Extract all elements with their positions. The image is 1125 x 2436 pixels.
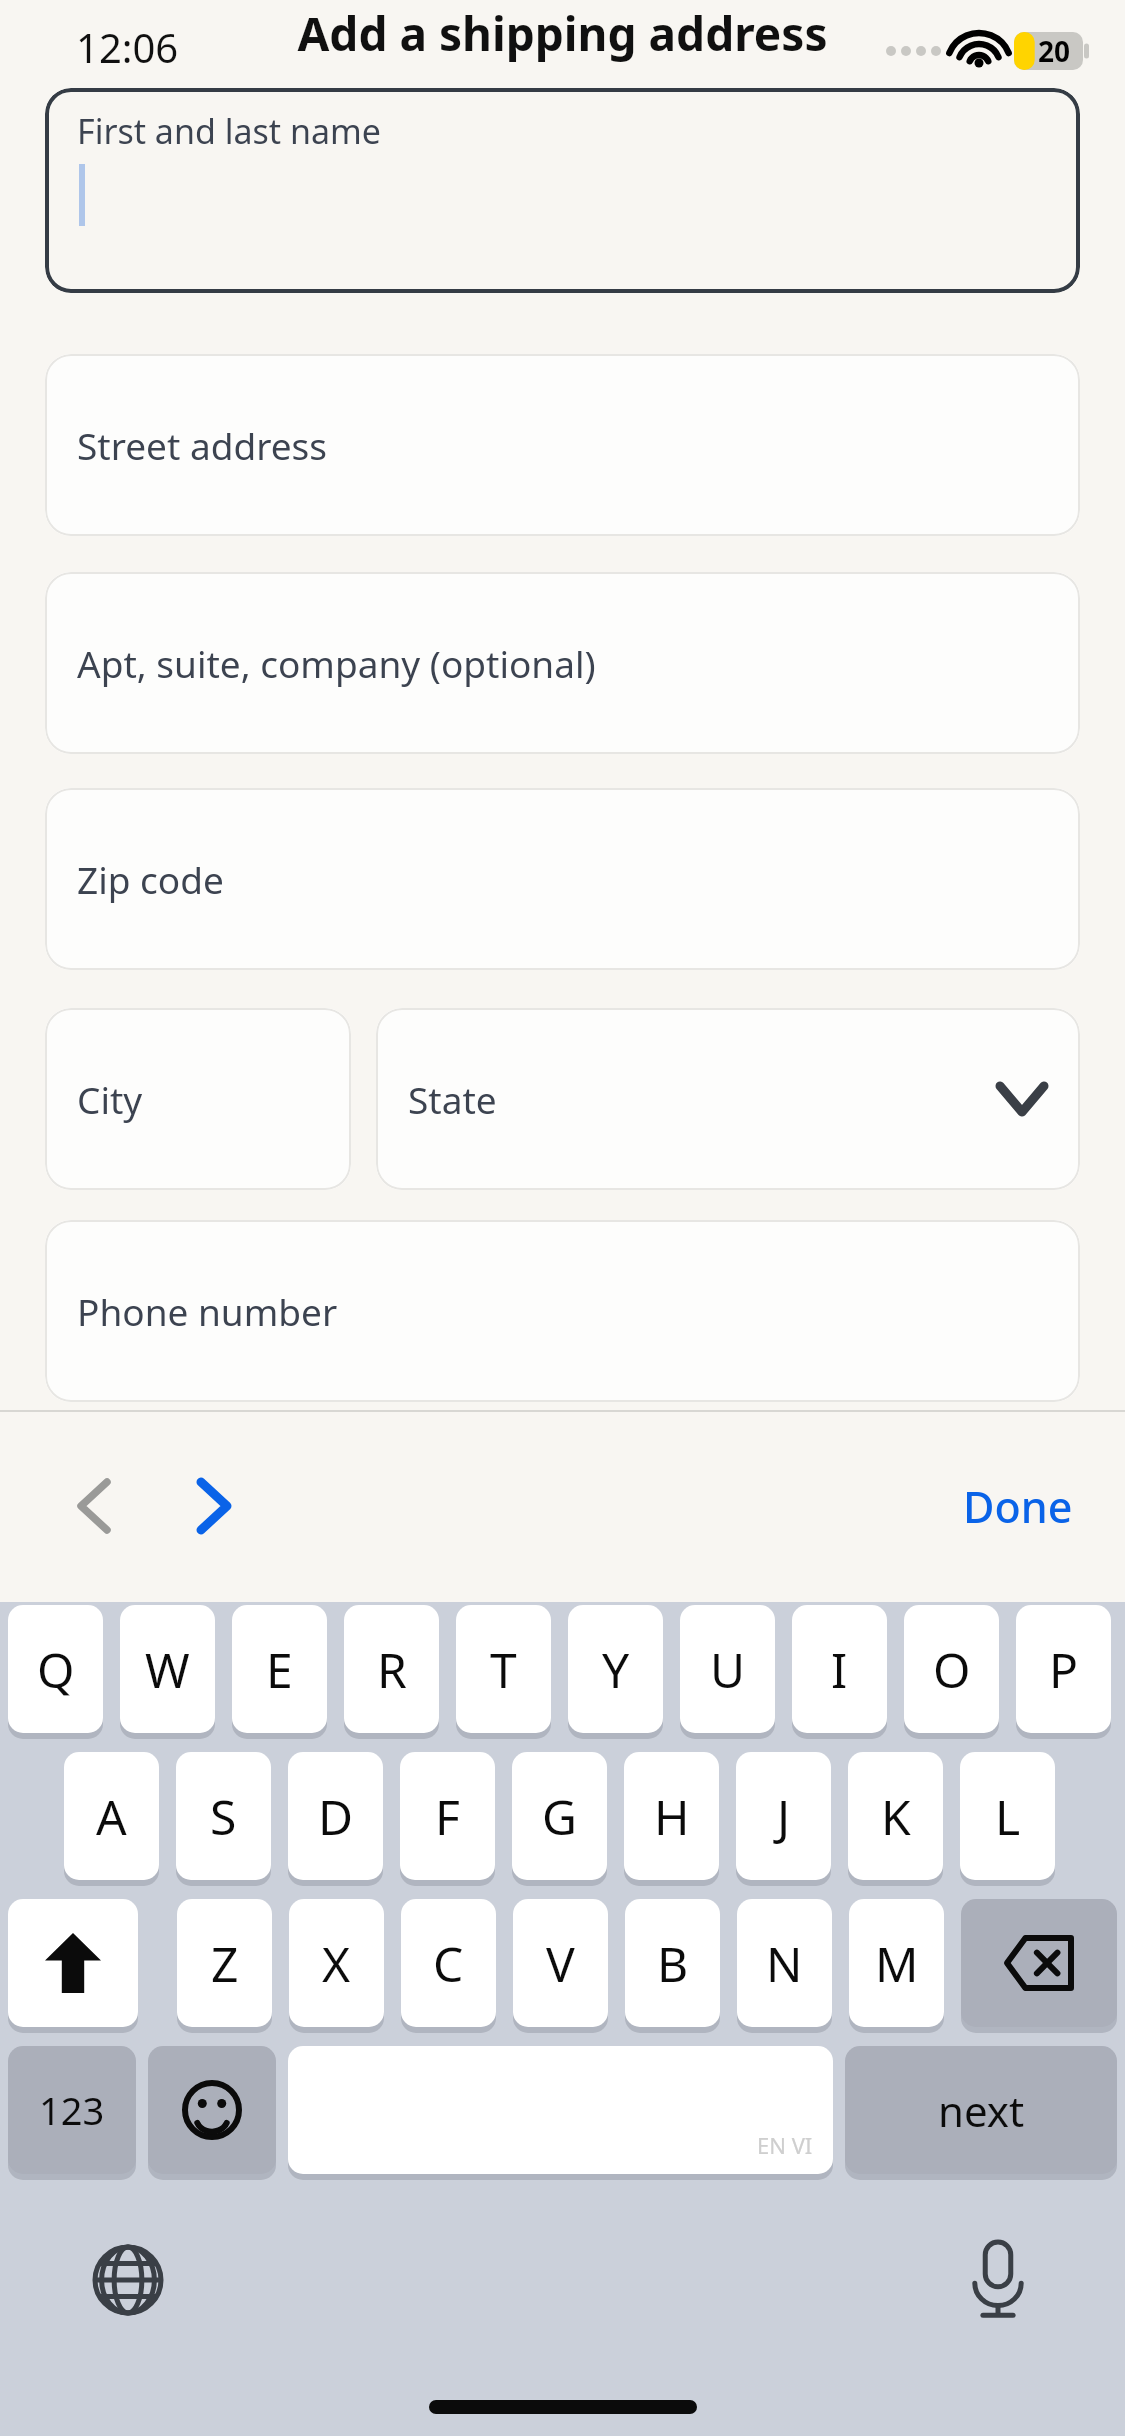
button[interactable]: Phone number: [45, 1220, 1080, 1402]
button[interactable]: Y: [568, 1605, 663, 1733]
staticText: M: [875, 1931, 919, 1996]
button[interactable]: W: [120, 1605, 215, 1733]
staticText: Street address: [77, 420, 328, 470]
button[interactable]: Change keyboard: [78, 2230, 178, 2330]
button[interactable]: C: [401, 1899, 496, 2027]
staticText: 20: [1038, 32, 1071, 70]
staticText: D: [318, 1784, 354, 1849]
button[interactable]: Space: [288, 2046, 833, 2174]
button[interactable]: Apt, suite, company (optional): [45, 572, 1080, 754]
staticText: Z: [211, 1931, 239, 1996]
staticText: W: [145, 1637, 190, 1702]
staticText: E: [266, 1637, 293, 1702]
staticText: P: [1049, 1637, 1079, 1702]
button[interactable]: I: [792, 1605, 887, 1733]
button[interactable]: Voice input: [948, 2230, 1048, 2330]
button[interactable]: G: [512, 1752, 607, 1880]
button[interactable]: P: [1016, 1605, 1111, 1733]
staticText: N: [766, 1931, 803, 1996]
staticText: City: [77, 1074, 143, 1124]
button[interactable]: U: [680, 1605, 775, 1733]
button[interactable]: A: [64, 1752, 159, 1880]
button[interactable]: F: [400, 1752, 495, 1880]
staticText: Done: [963, 1477, 1073, 1536]
staticText: EN VI: [757, 2130, 813, 2160]
button[interactable]: O: [904, 1605, 999, 1733]
button[interactable]: City: [45, 1008, 351, 1190]
button[interactable]: Zip code: [45, 788, 1080, 970]
button[interactable]: State: [376, 1008, 1080, 1190]
button[interactable]: S: [176, 1752, 271, 1880]
button[interactable]: T: [456, 1605, 551, 1733]
staticText: 123: [39, 2084, 105, 2136]
button[interactable]: L: [960, 1752, 1055, 1880]
staticText: Phone number: [77, 1286, 338, 1336]
button[interactable]: Z: [177, 1899, 272, 2027]
button[interactable]: N: [737, 1899, 832, 2027]
staticText: U: [710, 1637, 746, 1702]
button[interactable]: X: [289, 1899, 384, 2027]
staticText: T: [490, 1637, 517, 1702]
staticText: A: [96, 1784, 127, 1849]
button[interactable]: H: [624, 1752, 719, 1880]
staticText: X: [322, 1931, 351, 1996]
button[interactable]: K: [848, 1752, 943, 1880]
staticText: K: [881, 1784, 911, 1849]
staticText: 12:06: [76, 20, 179, 74]
staticText: Q: [37, 1637, 75, 1702]
staticText: J: [777, 1784, 791, 1849]
button[interactable]: E: [232, 1605, 327, 1733]
staticText: F: [435, 1784, 460, 1849]
staticText: L: [995, 1784, 1021, 1849]
button[interactable]: Street address: [45, 354, 1080, 536]
staticText: Zip code: [77, 854, 224, 904]
button[interactable]: B: [625, 1899, 720, 2027]
button[interactable]: Previous field: [42, 1454, 146, 1558]
staticText: Apt, suite, company (optional): [77, 638, 596, 688]
staticText: O: [933, 1637, 971, 1702]
staticText: First and last name: [77, 108, 381, 154]
button[interactable]: next: [845, 2046, 1117, 2174]
staticText: C: [433, 1931, 464, 1996]
button[interactable]: M: [849, 1899, 944, 2027]
staticText: H: [654, 1784, 690, 1849]
staticText: Add a shipping address: [297, 2, 828, 65]
button[interactable]: First and last name: [45, 88, 1080, 293]
staticText: R: [377, 1637, 407, 1702]
button[interactable]: J: [736, 1752, 831, 1880]
staticText: G: [542, 1784, 577, 1849]
staticText: V: [546, 1931, 575, 1996]
staticText: B: [657, 1931, 689, 1996]
button[interactable]: Next field: [162, 1454, 266, 1558]
button[interactable]: Shift: [8, 1899, 138, 2027]
button[interactable]: Q: [8, 1605, 103, 1733]
button[interactable]: Emoji: [148, 2046, 276, 2174]
button[interactable]: 123: [8, 2046, 136, 2174]
button[interactable]: Backspace: [961, 1899, 1117, 2027]
staticText: S: [210, 1784, 237, 1849]
staticText: next: [938, 2082, 1025, 2139]
staticText: State: [408, 1074, 497, 1124]
button[interactable]: V: [513, 1899, 608, 2027]
staticText: Y: [602, 1637, 630, 1702]
button[interactable]: R: [344, 1605, 439, 1733]
button[interactable]: Done: [945, 1461, 1091, 1552]
staticText: I: [831, 1637, 848, 1702]
button[interactable]: D: [288, 1752, 383, 1880]
